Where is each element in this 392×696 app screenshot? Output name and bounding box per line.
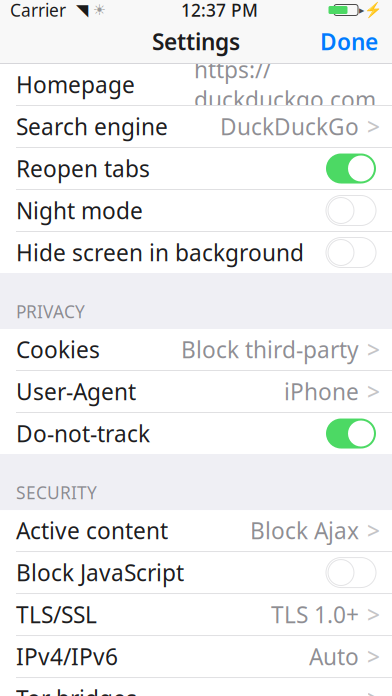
button[interactable]: Done bbox=[306, 16, 392, 66]
staticText: Reopen tabs bbox=[16, 153, 150, 183]
button[interactable]: Homepage bbox=[0, 64, 392, 105]
staticText: iPhone bbox=[284, 376, 359, 407]
staticText: Carrier bbox=[10, 0, 66, 21]
staticText: Block third-party bbox=[181, 334, 359, 365]
staticText: > bbox=[367, 334, 380, 365]
button[interactable]: Search engine bbox=[0, 106, 392, 147]
staticText: Auto bbox=[309, 641, 359, 672]
staticText: > bbox=[367, 376, 380, 407]
button[interactable]: Tor bridges bbox=[0, 678, 392, 696]
staticText: ▸ bbox=[359, 4, 364, 16]
staticText: PRIVACY bbox=[16, 300, 85, 323]
staticText: SECURITY bbox=[16, 481, 97, 504]
staticText: Block Ajax bbox=[250, 515, 359, 546]
staticText: TLS/SSL bbox=[16, 599, 97, 630]
staticText: Cookies bbox=[16, 334, 100, 365]
button[interactable]: Active content bbox=[0, 510, 392, 551]
staticText: Block JavaScript bbox=[16, 557, 184, 588]
staticText: ☀ bbox=[88, 2, 106, 18]
staticText: TLS 1.0+ bbox=[271, 599, 359, 630]
staticText: 12:37 PM bbox=[181, 0, 258, 21]
staticText: Done bbox=[320, 26, 378, 56]
staticText: > bbox=[367, 641, 380, 672]
staticText: Active content bbox=[16, 515, 168, 546]
button[interactable]: Reopen tabs bbox=[0, 148, 392, 189]
button[interactable]: Block JavaScript bbox=[0, 552, 392, 593]
staticText: ⚡ bbox=[364, 2, 382, 18]
button[interactable]: Night mode bbox=[0, 190, 392, 231]
staticText: DuckDuckGo bbox=[220, 111, 359, 141]
button[interactable]: User-Agent bbox=[0, 371, 392, 412]
button[interactable]: Hide screen in background bbox=[0, 232, 392, 273]
staticText: Settings bbox=[152, 26, 240, 56]
button[interactable]: Cookies bbox=[0, 329, 392, 370]
staticText: Homepage bbox=[16, 69, 135, 99]
staticText: Search engine bbox=[16, 111, 168, 141]
staticText: Hide screen in background bbox=[16, 237, 304, 267]
button[interactable]: TLS/SSL bbox=[0, 594, 392, 635]
staticText: Night mode bbox=[16, 195, 143, 225]
staticText: > bbox=[367, 111, 380, 141]
staticText: ◥ bbox=[66, 1, 88, 19]
staticText: Do-not-track bbox=[16, 418, 150, 449]
staticText: https://duckduckgo.com bbox=[194, 54, 376, 115]
staticText: > bbox=[367, 683, 380, 696]
button[interactable]: IPv4/IPv6 bbox=[0, 636, 392, 677]
button[interactable]: Do-not-track bbox=[0, 413, 392, 454]
staticText: > bbox=[367, 515, 380, 546]
staticText: User-Agent bbox=[16, 376, 136, 407]
staticText: Tor bridges bbox=[16, 683, 137, 696]
staticText: > bbox=[367, 599, 380, 630]
staticText: IPv4/IPv6 bbox=[16, 641, 118, 672]
